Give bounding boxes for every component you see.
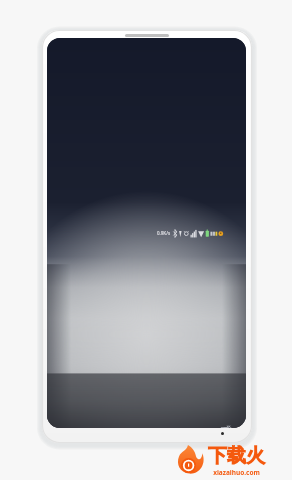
staticText: xiazaihuo.com — [213, 468, 260, 477]
staticText: 0.9K/s — [157, 230, 171, 236]
staticText: 下载火 — [208, 444, 265, 468]
